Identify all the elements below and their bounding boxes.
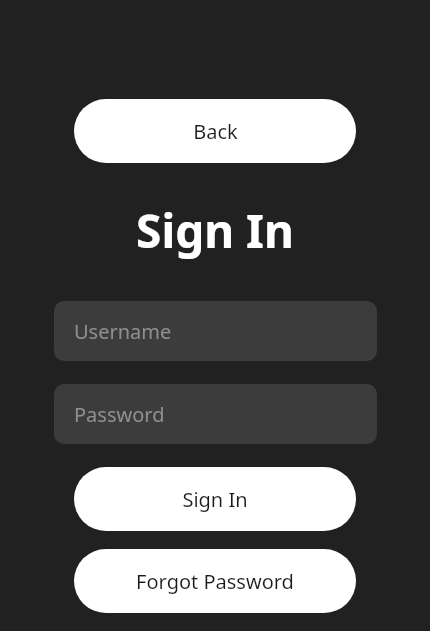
button[interactable]: Username: [54, 301, 377, 361]
button[interactable]: Forgot Password: [74, 549, 356, 613]
staticText: Username: [74, 318, 172, 345]
button[interactable]: Password: [54, 384, 377, 444]
staticText: Sign In: [182, 486, 248, 513]
button[interactable]: Back: [74, 99, 356, 163]
staticText: Forgot Password: [136, 568, 294, 595]
staticText: Password: [74, 401, 165, 428]
staticText: Sign In: [136, 199, 294, 262]
button[interactable]: Sign In: [74, 467, 356, 531]
staticText: Back: [193, 118, 238, 145]
